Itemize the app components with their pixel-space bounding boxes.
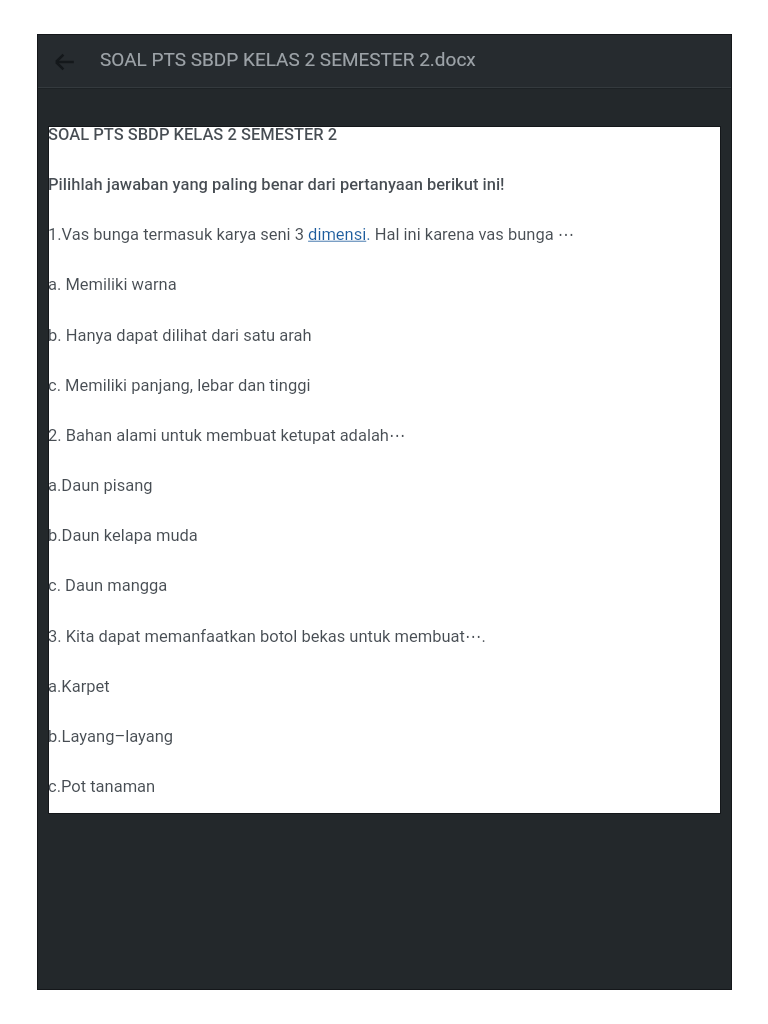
button[interactable]: Back bbox=[40, 38, 88, 86]
staticText: Pilihlah jawaban yang paling benar dari … bbox=[48, 175, 505, 194]
staticText: a. Memiliki warna bbox=[48, 275, 177, 294]
staticText: c. Daun mangga bbox=[48, 576, 168, 595]
staticText: SOAL PTS SBDP KELAS 2 SEMESTER 2 bbox=[48, 125, 338, 144]
staticText: a.Daun pisang bbox=[48, 476, 153, 495]
staticText: a.Karpet bbox=[48, 677, 110, 696]
staticText: b. Hanya dapat dilihat dari satu arah bbox=[48, 326, 312, 345]
staticText: 3. Kita dapat memanfaatkan botol bekas u… bbox=[48, 627, 486, 646]
button[interactable]: SOAL PTS SBDP KELAS 2 SEMESTER 2 bbox=[49, 127, 720, 813]
staticText: c.Pot tanaman bbox=[48, 777, 156, 796]
staticText: c. Memiliki panjang, lebar dan tinggi bbox=[48, 376, 311, 395]
staticText: b.Layang–layang bbox=[48, 727, 174, 746]
staticText: 1.Vas bunga termasuk karya seni 3 dimens… bbox=[48, 225, 575, 244]
staticText: SOAL PTS SBDP KELAS 2 SEMESTER 2.docx bbox=[100, 48, 476, 70]
staticText: b.Daun kelapa muda bbox=[48, 526, 198, 545]
staticText: 2. Bahan alami untuk membuat ketupat ada… bbox=[48, 426, 406, 445]
